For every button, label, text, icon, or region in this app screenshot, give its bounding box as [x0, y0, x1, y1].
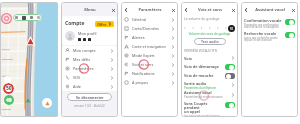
staticText: Offre [97, 22, 107, 27]
button[interactable]: Notifications [121, 69, 178, 78]
staticText: Sortie audio [184, 81, 207, 86]
button[interactable]: Close [289, 6, 297, 14]
staticText: Demander une confirmation avant de lance… [244, 23, 280, 29]
button[interactable]: Close [169, 6, 177, 14]
button[interactable]: SOS [62, 73, 117, 82]
button[interactable]: Map layers [4, 76, 11, 83]
staticText: Les sons sont coupés lorsque vous êtes e… [184, 114, 221, 117]
staticText: Mon profil [78, 31, 97, 36]
button[interactable]: Mode Expert [121, 51, 178, 60]
staticText: Lance une recherche vocale depuis l'écra… [244, 36, 278, 42]
staticText: Sons Coupés pendant un appel [184, 101, 223, 114]
button[interactable]: Se déconnecter [67, 93, 112, 101]
button[interactable]: Compte [62, 16, 117, 45]
staticText: Notifications [132, 71, 155, 76]
button[interactable]: Offre [95, 21, 114, 27]
staticText: Paramètres [138, 7, 162, 13]
staticText: Voix [184, 56, 192, 61]
button[interactable]: Close [109, 6, 117, 14]
staticText: Aide [73, 84, 81, 89]
staticText: Test audio [201, 39, 219, 44]
button[interactable]: Sons Coupés pendant un appel [181, 100, 238, 117]
button[interactable]: Sortie audio [181, 80, 238, 90]
staticText: Compte [65, 20, 85, 27]
staticText: Menu [84, 7, 96, 13]
staticText: 49 [6, 97, 12, 104]
button[interactable]: Quick actions [13, 14, 42, 21]
staticText: Alertes [132, 35, 145, 40]
staticText: 10 [230, 27, 233, 31]
button[interactable]: Voix [181, 54, 238, 62]
button[interactable]: Close [229, 6, 237, 14]
button[interactable]: Voix de démarrage [181, 62, 238, 71]
button[interactable]: Back [122, 6, 130, 14]
button[interactable]: Voix et sons [121, 60, 178, 69]
staticText: Carte/Données [132, 26, 159, 31]
button[interactable]: Volume [228, 25, 235, 32]
button[interactable]: Aide [62, 82, 117, 91]
staticText: Carte et navigation [132, 44, 166, 49]
staticText: Mode Expert [132, 53, 155, 58]
button[interactable]: Back [182, 6, 190, 14]
button[interactable]: Recherche vocale [241, 30, 298, 43]
button[interactable]: Report incident [1, 13, 12, 24]
button[interactable]: Général [121, 15, 178, 24]
button[interactable]: Back [242, 6, 250, 14]
button[interactable]: Add report [42, 98, 52, 108]
staticText: Paramètres du téléphone [184, 86, 217, 90]
staticText: Paramètres [73, 66, 94, 71]
staticText: Recherche vocale [244, 31, 277, 36]
staticText: Confirmation vocale [244, 18, 282, 23]
staticText: SOS [73, 75, 81, 80]
staticText: Voix de démarrage [184, 64, 219, 69]
staticText: Mon compte [73, 48, 96, 53]
staticText: Assistant vocal [255, 7, 285, 13]
button[interactable]: Mes défis [62, 55, 117, 64]
staticText: À propos [132, 80, 148, 85]
staticText: Général [132, 17, 146, 22]
staticText: SYNTHÈSE VOCALE (TTS) [184, 49, 218, 53]
button[interactable]: À propos [121, 78, 178, 87]
staticText: Voix et sons [132, 62, 154, 67]
button[interactable]: Carte et navigation [121, 42, 178, 51]
staticText: Assistant vocal [184, 90, 212, 95]
staticText: Mes défis [73, 57, 90, 62]
staticText: Paramètres de reconnaissance vocale [184, 95, 231, 100]
staticText: Le volume du guidage [184, 16, 220, 21]
staticText: Voix de mouche [184, 73, 214, 78]
staticText: Volume des sons de guidage [181, 32, 238, 36]
button[interactable]: Assistant vocal [181, 90, 238, 100]
button[interactable]: Mon compte [62, 46, 117, 55]
button[interactable]: Confirmation vocale [241, 17, 298, 30]
staticText: 50 [6, 85, 12, 92]
button[interactable]: Paramètres [62, 64, 117, 73]
staticText: version 1.0.0 - Build 42 [74, 104, 105, 108]
staticText: Se déconnecter [76, 95, 104, 100]
button[interactable]: Carte/Données [121, 24, 178, 33]
button[interactable]: Test audio [194, 38, 226, 45]
button[interactable]: Voix de mouche [181, 71, 238, 80]
button[interactable]: Alertes [121, 33, 178, 42]
staticText: Voix et sons [198, 7, 222, 13]
